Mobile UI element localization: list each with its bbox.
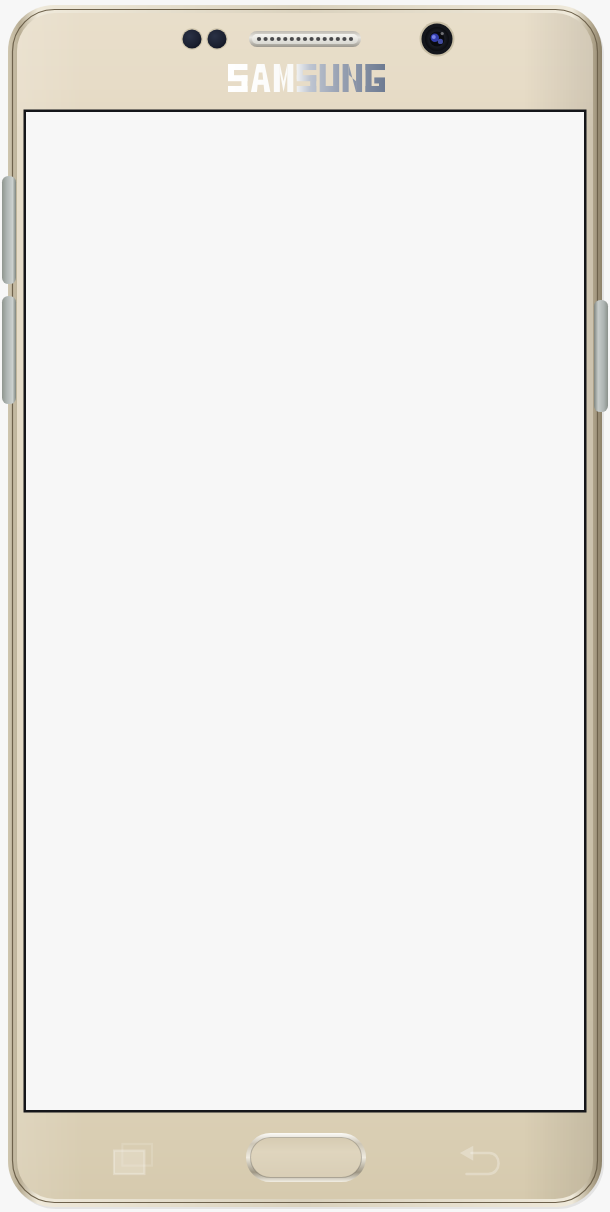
button[interactable]: Back [452, 1140, 512, 1180]
button[interactable]: Volume up [2, 176, 18, 284]
button[interactable]: Home [246, 1133, 366, 1182]
button[interactable]: Volume down [2, 296, 18, 404]
button[interactable]: Recent apps [108, 1140, 168, 1180]
button[interactable]: Power [594, 300, 610, 412]
